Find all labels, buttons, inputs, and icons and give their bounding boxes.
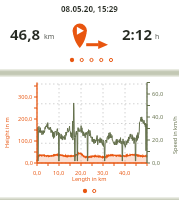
staticText: 60,0 — [152, 90, 164, 98]
staticText: Height in m — [1, 102, 9, 146]
staticText: 30,0 — [97, 169, 109, 177]
staticText: km — [44, 32, 55, 42]
button[interactable]: Page indicator — [82, 188, 97, 194]
staticText: 100,0 — [18, 137, 33, 145]
staticText: 46,8 — [10, 24, 41, 44]
staticText: h — [155, 32, 160, 42]
staticText: 08.05.20, 15:29 — [61, 3, 118, 14]
staticText: 300,0 — [18, 93, 33, 101]
staticText: 20,0 — [75, 169, 87, 177]
staticText: 0,0 — [33, 169, 41, 177]
staticText: 40,0 — [152, 113, 164, 121]
staticText: 0,0 — [152, 159, 160, 167]
staticText: 0,0 — [25, 159, 33, 167]
staticText: Length in km — [72, 175, 107, 183]
staticText: 20,0 — [152, 136, 164, 144]
staticText: Speed in km/h — [166, 99, 174, 149]
staticText: 10,0 — [53, 169, 65, 177]
staticText: 40,0 — [119, 169, 131, 177]
button[interactable]: Route overview — [72, 20, 110, 50]
button[interactable]: Page indicator — [69, 57, 114, 63]
staticText: 2:12 — [122, 24, 152, 44]
staticText: 200,0 — [18, 115, 33, 123]
